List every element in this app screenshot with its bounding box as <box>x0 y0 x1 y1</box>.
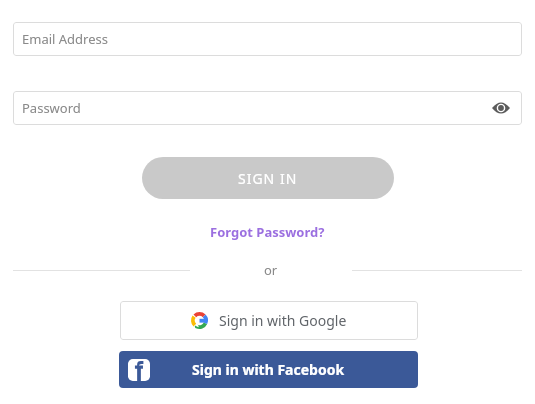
button[interactable]: Email Address <box>13 22 522 56</box>
button[interactable]: Sign in with Google <box>120 301 418 340</box>
staticText: Password <box>22 99 81 117</box>
button[interactable]: SIGN IN <box>142 157 394 199</box>
staticText: Sign in with Facebook <box>192 360 345 379</box>
staticText: Email Address <box>22 30 108 48</box>
staticText: or <box>264 261 278 279</box>
button[interactable]: Password <box>13 91 522 125</box>
button[interactable]: Show password <box>490 97 512 119</box>
staticText: SIGN IN <box>238 169 298 188</box>
button[interactable]: Sign in with Facebook <box>119 351 418 388</box>
button[interactable]: Forgot Password? <box>204 220 331 244</box>
staticText: Forgot Password? <box>210 223 325 241</box>
staticText: Sign in with Google <box>219 311 347 330</box>
